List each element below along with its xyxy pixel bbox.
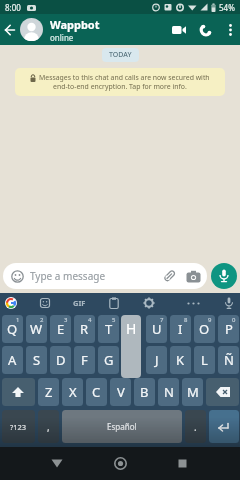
staticText: 1 (16, 316, 20, 324)
button[interactable]: B (134, 378, 155, 406)
button[interactable] (220, 14, 240, 45)
staticText: 54% (219, 2, 235, 13)
button[interactable]: , (38, 410, 59, 443)
staticText: 7 (160, 316, 164, 324)
staticText: 0 (232, 316, 236, 324)
staticText: E (57, 320, 65, 338)
button[interactable]: K (170, 346, 191, 374)
button[interactable]: Wappbot (50, 17, 166, 43)
button[interactable]: V (110, 378, 131, 406)
button[interactable] (1, 293, 21, 313)
staticText: 4 (88, 316, 92, 324)
staticText: N (164, 383, 174, 401)
button[interactable] (206, 378, 239, 406)
staticText: , (47, 420, 50, 434)
button[interactable]: A (2, 346, 23, 374)
staticText: . (194, 420, 197, 434)
button[interactable]: G (98, 346, 119, 374)
staticText: Q (7, 320, 18, 338)
staticText: D (56, 351, 66, 369)
staticText: 8 (184, 316, 188, 324)
staticText: T (105, 320, 113, 338)
staticText: S (33, 351, 41, 369)
staticText: 5 (112, 316, 116, 324)
button[interactable] (139, 293, 159, 313)
staticText: I (178, 320, 183, 338)
staticText: ?123 (10, 422, 27, 432)
button[interactable] (166, 14, 192, 45)
staticText: U (152, 320, 162, 338)
button[interactable]: GIF (69, 293, 89, 313)
button[interactable] (192, 14, 220, 45)
staticText: K (176, 351, 185, 369)
button[interactable]: C (86, 378, 107, 406)
button[interactable]: Z (38, 378, 59, 406)
staticText: Ñ (224, 351, 234, 369)
button[interactable]: X (62, 378, 83, 406)
button[interactable]: O (194, 315, 215, 343)
button[interactable]: R (74, 315, 95, 343)
staticText: X (69, 383, 77, 401)
staticText: 2 (40, 316, 44, 324)
button[interactable] (219, 293, 239, 313)
staticText: Messages to this chat and calls are now … (39, 73, 210, 82)
button[interactable] (2, 378, 35, 406)
staticText: Español (107, 421, 137, 432)
staticText: H (126, 319, 137, 338)
button[interactable]: Messages to this chat and calls are now … (15, 68, 225, 96)
button[interactable] (168, 447, 196, 480)
staticText: end-to-end encryption. Tap for more info… (53, 82, 187, 91)
button[interactable]: J (146, 346, 167, 374)
button[interactable]: L (194, 346, 215, 374)
button[interactable]: D (50, 346, 71, 374)
staticText: V (117, 383, 125, 401)
staticText: 3 (64, 316, 68, 324)
button[interactable]: . (185, 410, 206, 443)
button[interactable]: M (182, 378, 203, 406)
button[interactable]: F (74, 346, 95, 374)
staticText: R (80, 320, 89, 338)
button[interactable]: S (26, 346, 47, 374)
button[interactable] (209, 410, 239, 443)
button[interactable] (104, 293, 124, 313)
staticText: J (155, 351, 159, 369)
staticText: TODAY (109, 50, 132, 60)
button[interactable]: Q (2, 315, 23, 343)
button[interactable]: W (26, 315, 47, 343)
staticText: Z (45, 383, 53, 401)
staticText: F (81, 351, 88, 369)
button[interactable] (211, 263, 237, 289)
staticText: B (140, 383, 149, 401)
button[interactable]: ?123 (2, 410, 35, 443)
button[interactable] (20, 18, 43, 41)
staticText: GIF (73, 298, 86, 308)
button[interactable] (106, 447, 134, 480)
button[interactable] (43, 447, 71, 480)
staticText: O (199, 320, 210, 338)
staticText: P (225, 320, 233, 338)
button[interactable] (0, 14, 20, 45)
staticText: 9 (208, 316, 212, 324)
button[interactable]: U (146, 315, 167, 343)
staticText: A (8, 351, 17, 369)
button[interactable] (35, 293, 55, 313)
button[interactable]: Ñ (218, 346, 239, 374)
button[interactable]: E (50, 315, 71, 343)
button[interactable]: Type a message (3, 263, 207, 289)
staticText: Type a message (30, 269, 106, 283)
staticText: L (201, 351, 208, 369)
button[interactable] (183, 293, 203, 313)
button[interactable]: I (170, 315, 191, 343)
staticText: W (30, 320, 43, 338)
button[interactable]: P (218, 315, 239, 343)
staticText: C (92, 383, 101, 401)
staticText: M (187, 383, 199, 401)
staticText: 8:00 (5, 2, 21, 13)
button[interactable]: T (98, 315, 119, 343)
staticText: G (104, 351, 114, 369)
button[interactable]: Español (62, 410, 182, 443)
staticText: Wappbot (50, 17, 100, 32)
button[interactable]: N (158, 378, 179, 406)
staticText: online (50, 32, 74, 43)
